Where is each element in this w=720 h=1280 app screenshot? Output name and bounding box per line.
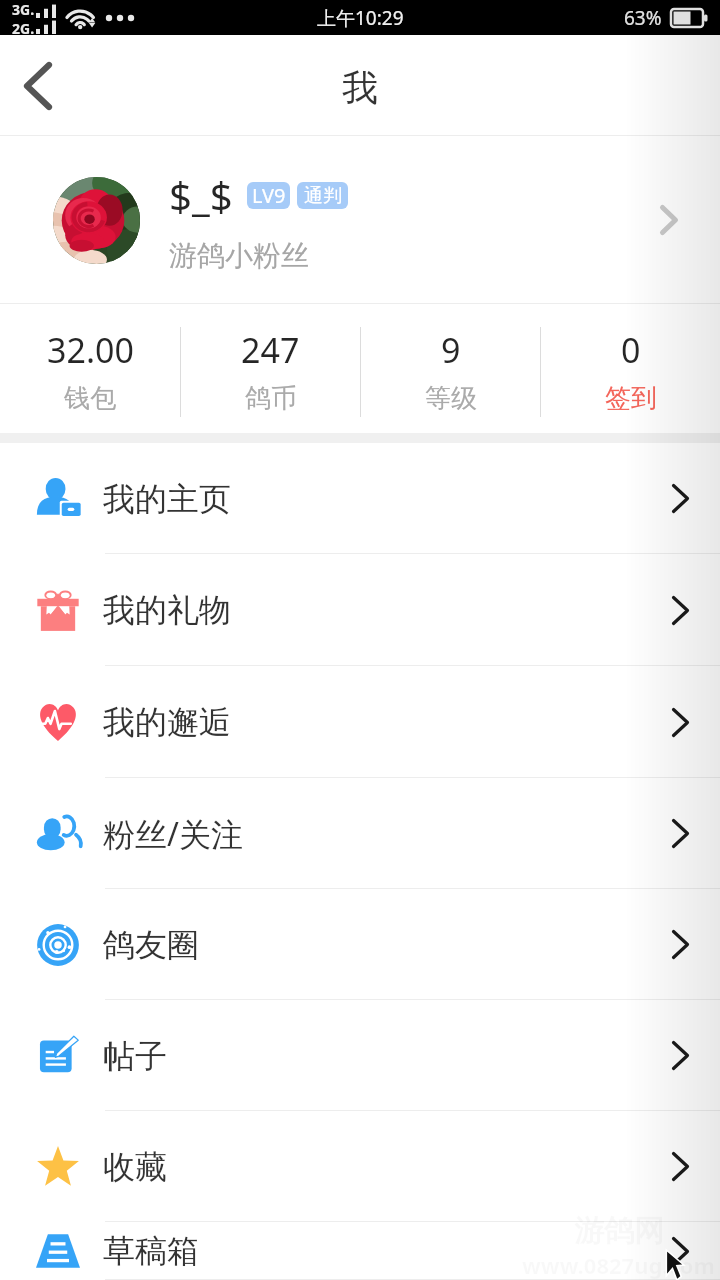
staticText: 收藏: [103, 1147, 167, 1187]
staticText: 9: [441, 327, 461, 373]
button[interactable]: 我的礼物: [0, 554, 720, 666]
button[interactable]: 0: [541, 304, 720, 433]
button[interactable]: 收藏: [0, 1111, 720, 1222]
button[interactable]: Back: [0, 42, 76, 130]
staticText: 草稿箱: [103, 1231, 199, 1271]
staticText: 3G.: [12, 0, 35, 19]
button[interactable]: 我的邂逅: [0, 666, 720, 778]
staticText: 32.00: [47, 327, 134, 373]
staticText: 等级: [425, 382, 477, 415]
staticText: 游鸽小粉丝: [169, 238, 309, 273]
button[interactable]: 247: [181, 304, 360, 433]
button[interactable]: 粉丝/关注: [0, 778, 720, 889]
button[interactable]: 帖子: [0, 1000, 720, 1111]
staticText: 鸽币: [245, 382, 297, 415]
button[interactable]: 鸽友圈: [0, 889, 720, 1000]
staticText: 上午10:29: [317, 5, 404, 31]
staticText: 粉丝/关注: [103, 812, 243, 856]
staticText: 钱包: [64, 382, 116, 415]
staticText: 63%: [624, 5, 662, 31]
staticText: 247: [241, 327, 300, 373]
button[interactable]: 32.00: [0, 304, 180, 433]
staticText: 通判: [304, 184, 342, 208]
button[interactable]: 草稿箱: [0, 1222, 720, 1280]
staticText: 鸽友圈: [103, 925, 199, 965]
staticText: 我的主页: [103, 479, 231, 519]
staticText: 我: [342, 65, 378, 110]
staticText: 我的礼物: [103, 590, 231, 630]
staticText: 我的邂逅: [103, 702, 231, 742]
staticText: 签到: [605, 382, 657, 415]
button[interactable]: 9: [361, 304, 540, 433]
staticText: 2G.: [12, 19, 35, 35]
staticText: 游鸽网: [574, 1212, 664, 1250]
staticText: 0: [621, 327, 641, 373]
staticText: $_$: [169, 168, 233, 222]
button[interactable]: $_$: [0, 136, 720, 304]
staticText: LV9: [252, 182, 286, 209]
staticText: www.0827ug.com: [522, 1250, 716, 1280]
button[interactable]: 我的主页: [0, 443, 720, 554]
staticText: 帖子: [103, 1036, 167, 1076]
